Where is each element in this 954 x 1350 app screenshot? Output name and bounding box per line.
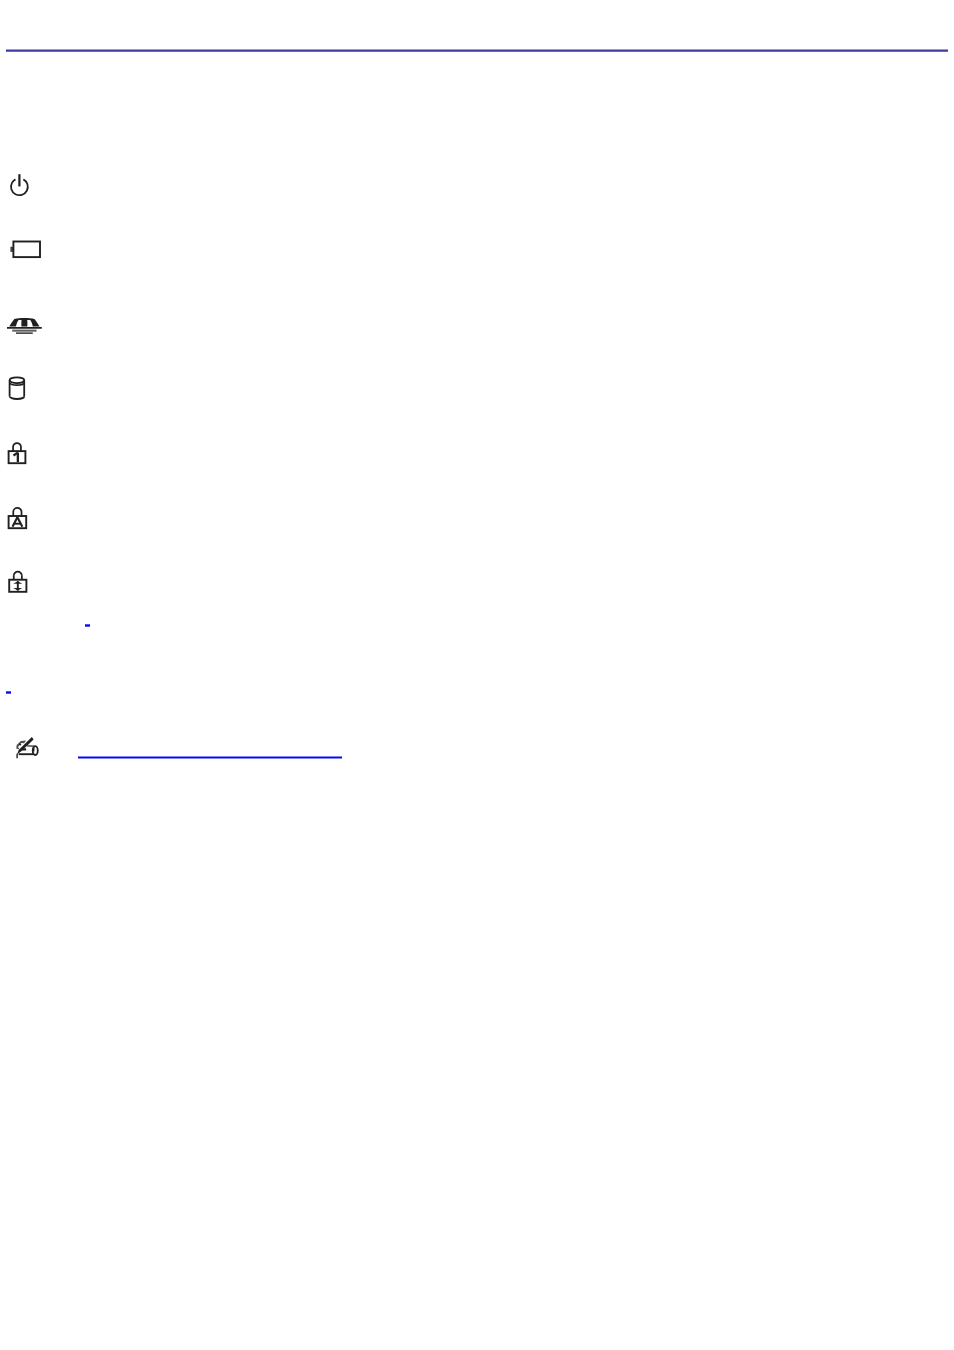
button[interactable]: Power indicator [0,166,954,206]
button[interactable]: Capital Lock indicator [0,499,954,537]
button[interactable]: Cross reference link [0,616,954,636]
button[interactable]: Battery charge indicator [0,232,954,268]
button[interactable]: Note [0,730,954,766]
button[interactable]: Scroll Lock indicator [0,563,954,601]
button[interactable]: Cross reference link [0,683,954,703]
button[interactable]: Number Lock indicator [0,434,954,472]
button[interactable]: Touchpad indicator [0,308,954,344]
button[interactable]: Drive activity indicator [0,370,954,408]
